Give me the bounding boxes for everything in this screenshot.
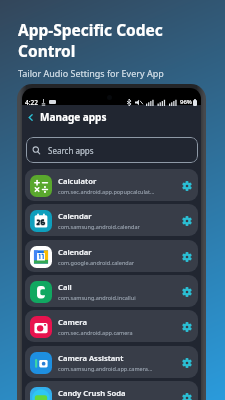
staticText: 96% bbox=[180, 98, 192, 106]
button[interactable]: Settings bbox=[179, 319, 194, 334]
button[interactable]: Back bbox=[23, 110, 37, 124]
staticText: Call bbox=[58, 282, 72, 292]
staticText: Camera bbox=[58, 317, 87, 327]
staticText: com.sec.android.app.camera bbox=[58, 329, 133, 336]
button[interactable]: Calendar bbox=[25, 240, 198, 272]
staticText: Search apps bbox=[48, 145, 94, 156]
staticText: Calendar bbox=[58, 247, 92, 257]
staticText: com.samsung.android.app.camera… bbox=[58, 365, 153, 372]
button[interactable]: Settings bbox=[179, 390, 194, 400]
button[interactable]: Settings bbox=[179, 355, 194, 370]
button[interactable]: Camera bbox=[25, 310, 198, 342]
staticText: Candy Crush Soda bbox=[58, 388, 126, 398]
button[interactable]: Settings bbox=[179, 249, 194, 264]
button[interactable]: Calculator bbox=[25, 169, 198, 201]
staticText: com.google.android.calendar bbox=[58, 259, 135, 266]
staticText: Control bbox=[18, 40, 76, 61]
staticText: Camera Assistant bbox=[58, 353, 124, 363]
button[interactable]: Call bbox=[25, 275, 198, 307]
button[interactable]: Settings bbox=[179, 213, 194, 228]
staticText: com.samsung.android.calendar bbox=[58, 223, 140, 230]
button[interactable]: Back bbox=[22, 109, 201, 125]
button[interactable]: Settings bbox=[179, 178, 194, 193]
staticText: com.samsung.android.incallui bbox=[58, 294, 136, 301]
button[interactable]: Search apps bbox=[26, 137, 198, 163]
staticText: Calendar bbox=[58, 211, 92, 221]
staticText: com.sec.android.app.popupcalculat… bbox=[58, 188, 155, 195]
button[interactable]: Settings bbox=[179, 284, 194, 299]
button[interactable]: Camera Assistant bbox=[25, 346, 198, 378]
staticText: Tailor Audio Settings for Every App bbox=[18, 67, 164, 79]
staticText: 4:22 bbox=[25, 98, 38, 107]
staticText: Calculator bbox=[58, 176, 97, 186]
button[interactable]: Calendar bbox=[25, 204, 198, 236]
staticText: Manage apps bbox=[40, 110, 107, 124]
button[interactable]: Candy Crush Soda bbox=[25, 381, 198, 400]
staticText: App-Specific Codec bbox=[18, 19, 163, 40]
